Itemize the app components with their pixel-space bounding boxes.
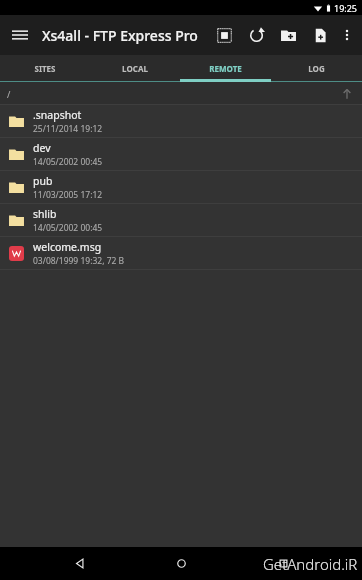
button[interactable]: .snapshot <box>0 105 362 138</box>
staticText: 03/08/1999 19:32, 72 B <box>33 255 125 267</box>
staticText: shlib <box>33 207 57 221</box>
staticText: 14/05/2002 00:45 <box>33 156 103 168</box>
button[interactable]: More options <box>336 15 358 55</box>
button[interactable]: Back <box>58 547 102 580</box>
button[interactable]: Select mode <box>208 15 240 55</box>
staticText: dev <box>33 141 51 155</box>
staticText: LOCAL <box>122 63 148 74</box>
staticText: 14/05/2002 00:45 <box>33 222 103 234</box>
button[interactable]: shlib <box>0 204 362 237</box>
button[interactable]: dev <box>0 138 362 171</box>
staticText: 11/03/2005 17:12 <box>33 189 103 201</box>
button[interactable]: welcome.msg <box>0 237 362 270</box>
button[interactable]: Refresh <box>240 15 272 55</box>
button[interactable]: SITES <box>0 55 90 82</box>
staticText: .snapshot <box>33 108 82 122</box>
staticText: / <box>7 88 11 100</box>
button[interactable]: pub <box>0 171 362 204</box>
staticText: LOG <box>308 63 325 74</box>
button[interactable]: Open navigation drawer <box>0 15 40 55</box>
staticText: Xs4all - FTP Express Pro <box>42 26 198 45</box>
staticText: pub <box>33 174 53 188</box>
button[interactable]: Recent apps <box>261 547 305 580</box>
button[interactable]: LOCAL <box>90 55 180 82</box>
staticText: 19:25 <box>334 2 358 14</box>
button[interactable]: New file <box>304 15 336 55</box>
button[interactable]: REMOTE <box>180 55 271 82</box>
staticText: 25/11/2014 19:12 <box>33 123 103 135</box>
button[interactable]: Up one level <box>332 82 362 105</box>
staticText: GetAndroid.iR <box>263 554 358 574</box>
staticText: REMOTE <box>209 63 242 74</box>
staticText: SITES <box>34 63 56 74</box>
staticText: welcome.msg <box>33 240 102 254</box>
button[interactable]: Home <box>159 547 203 580</box>
button[interactable]: New folder <box>272 15 304 55</box>
button[interactable]: LOG <box>271 55 362 82</box>
